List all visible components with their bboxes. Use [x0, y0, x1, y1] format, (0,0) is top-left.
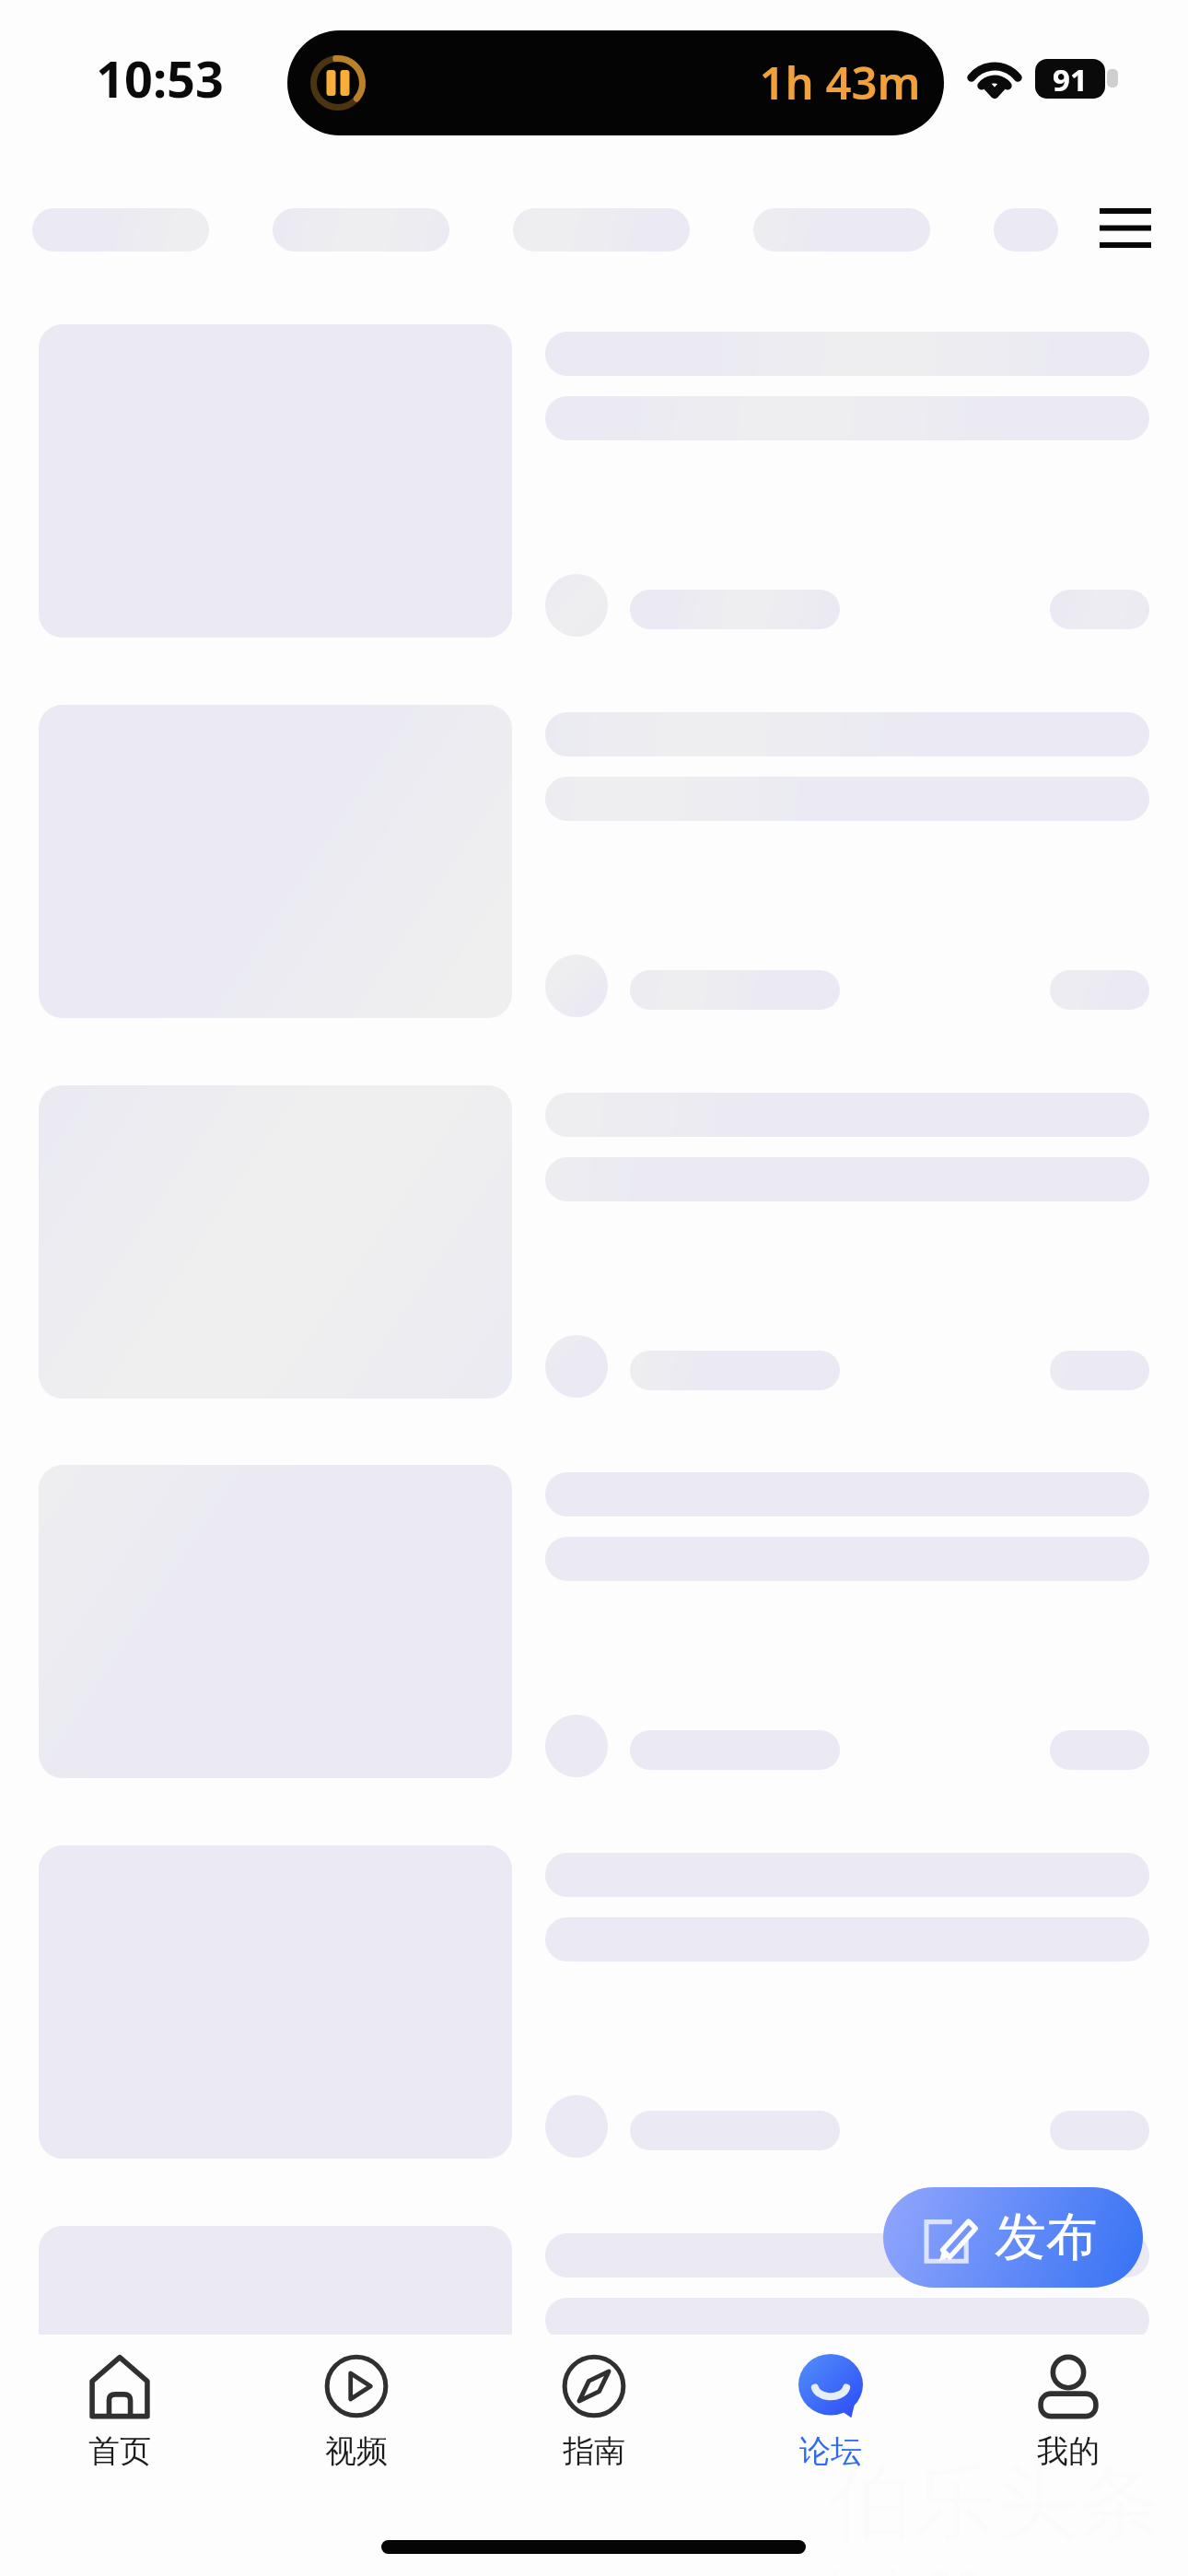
staticText: 我的	[1037, 2431, 1100, 2471]
button[interactable]	[753, 208, 930, 252]
button[interactable]: 首页	[1, 2340, 239, 2475]
staticText: 首页	[88, 2431, 151, 2471]
button[interactable]: 论坛	[712, 2340, 949, 2475]
button[interactable]	[32, 208, 209, 252]
staticText: 10:53	[96, 44, 224, 112]
button[interactable]	[273, 208, 449, 252]
button[interactable]	[513, 208, 690, 252]
button[interactable]: 视频	[238, 2340, 475, 2475]
button[interactable]: 指南	[475, 2340, 713, 2475]
staticText: 视频	[325, 2431, 388, 2471]
staticText: 发布	[995, 2205, 1098, 2270]
staticText: 伯乐头条	[829, 2451, 1160, 2555]
button[interactable]	[39, 2226, 512, 2539]
button[interactable]: 发布	[883, 2187, 1143, 2288]
staticText: 指南	[563, 2431, 625, 2471]
staticText: 论坛	[799, 2431, 862, 2471]
button[interactable]: 我的	[949, 2340, 1187, 2475]
staticText: 91	[1053, 59, 1088, 99]
button[interactable]: Menu	[1085, 192, 1164, 267]
button[interactable]: Live activity timer	[287, 30, 944, 135]
staticText: 1h 43m	[759, 52, 921, 113]
button[interactable]	[994, 208, 1058, 252]
